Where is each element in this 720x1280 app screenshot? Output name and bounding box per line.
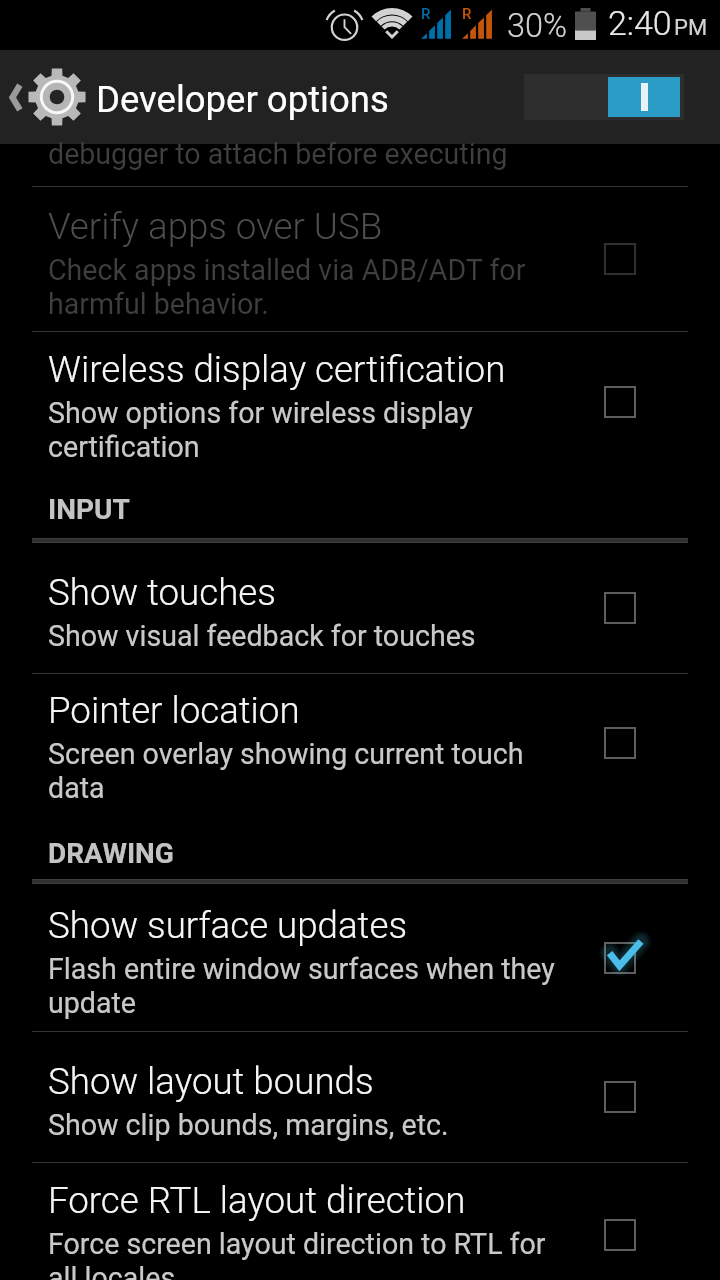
staticText: Show options for wireless display certif… xyxy=(48,396,473,464)
staticText: Pointer location xyxy=(48,689,300,732)
staticText: INPUT xyxy=(48,493,130,526)
staticText: 30% xyxy=(507,7,568,45)
staticText: PM xyxy=(674,15,708,41)
staticText: DRAWING xyxy=(48,837,174,870)
staticText: Force RTL layout direction xyxy=(48,1179,466,1222)
staticText: R xyxy=(462,5,472,23)
button[interactable]: debugger to attach before executing xyxy=(0,144,720,186)
staticText: Show surface updates xyxy=(48,904,407,947)
button[interactable]: Show touches xyxy=(0,543,720,673)
staticText: 2:40 xyxy=(608,3,672,43)
staticText: Screen overlay showing current touch dat… xyxy=(48,737,524,805)
staticText: R xyxy=(421,5,431,23)
staticText: Wireless display certification xyxy=(48,348,506,391)
button[interactable]: Force RTL layout direction xyxy=(0,1163,720,1280)
button[interactable]: Show layout bounds xyxy=(0,1032,720,1162)
staticText: Flash entire window surfaces when they u… xyxy=(48,952,555,1020)
button[interactable]: Navigate up xyxy=(0,50,387,144)
button[interactable]: Developer options on xyxy=(524,74,684,120)
staticText: Force screen layout direction to RTL for… xyxy=(48,1227,546,1280)
button[interactable]: Pointer location xyxy=(0,674,720,811)
staticText: Developer options xyxy=(96,78,389,121)
staticText: debugger to attach before executing xyxy=(48,137,508,171)
button[interactable]: Wireless display certification xyxy=(0,332,720,472)
staticText: Show clip bounds, margins, etc. xyxy=(48,1108,449,1142)
staticText: Show visual feedback for touches xyxy=(48,619,476,653)
staticText: Show layout bounds xyxy=(48,1060,374,1103)
staticText: Verify apps over USB xyxy=(48,205,383,248)
button[interactable]: Show surface updates xyxy=(0,884,720,1031)
staticText: Show touches xyxy=(48,571,276,614)
button[interactable]: Verify apps over USB xyxy=(0,187,720,331)
staticText: Check apps installed via ADB/ADT for har… xyxy=(48,253,526,321)
other: Navigate up xyxy=(9,82,23,113)
